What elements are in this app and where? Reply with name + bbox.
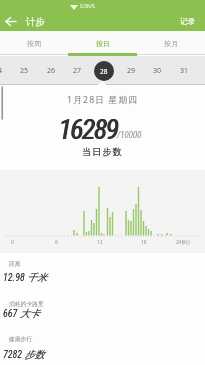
button[interactable]: 按日 [68,31,137,55]
staticText: 0.5K/S [80,3,95,10]
staticText: 24 [0,66,3,76]
staticText: 距离 [9,260,21,267]
staticText: 29 [127,66,136,76]
staticText: 7282 步数 [3,348,45,361]
staticText: 16289 [58,113,118,146]
button[interactable]: 按周 [0,31,68,55]
staticText: 当日步数 [82,146,123,158]
staticText: 31 [180,66,189,76]
staticText: 16289 [59,113,119,146]
staticText: 30 [153,66,162,76]
staticText: 12 [97,239,103,246]
staticText: 0 [11,239,14,246]
staticText: 18 [141,239,147,246]
staticText: /10000 [117,129,142,140]
staticText: 24(时) [176,239,190,246]
staticText: 16289 [58,113,118,146]
staticText: 12.98 千米 [3,271,47,284]
staticText: 消耗的卡路里 [9,300,44,307]
staticText: 计步 [26,16,45,28]
staticText: 12.98 千米 [3,271,47,284]
staticText: 667 大卡 [3,307,40,320]
staticText: 当日步数 [82,146,123,158]
staticText: 按周 [27,39,41,48]
staticText: 667 大卡 [3,307,40,320]
button[interactable] [2,12,20,30]
button[interactable]: 31 [171,61,197,81]
button[interactable]: 29 [118,61,144,81]
staticText: 28 [100,67,108,76]
staticText: 6 [55,239,58,246]
button[interactable]: 25 [11,61,37,81]
button[interactable]: 记录 [172,12,202,31]
button[interactable]: 26 [38,61,64,81]
staticText: 26 [47,66,56,76]
staticText: 7282 步数 [3,348,45,361]
staticText: 按日 [96,39,110,48]
button[interactable]: 30 [144,61,170,81]
staticText: 1月28日 星期四 [67,94,139,106]
staticText: 25 [20,66,29,76]
button[interactable]: 28 [94,61,114,81]
button[interactable]: 24 [0,61,11,81]
button[interactable]: 按月 [137,31,205,55]
staticText: 27 [73,66,82,76]
staticText: 记录 [180,17,195,26]
staticText: 健康步行 [9,335,33,342]
button[interactable]: 27 [64,61,90,81]
staticText: 按月 [164,39,178,48]
